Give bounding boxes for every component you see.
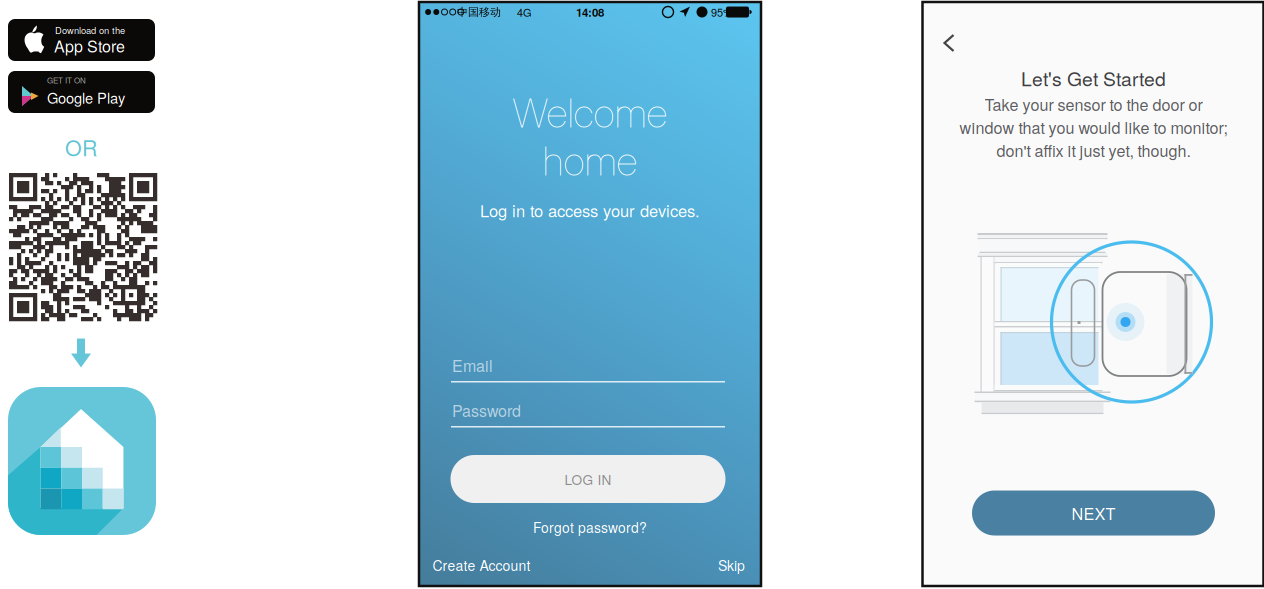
staticText: Password: [452, 398, 521, 421]
staticText: Google Play: [47, 87, 125, 108]
button[interactable]: Forgot password?: [520, 516, 660, 538]
button[interactable]: NEXT: [972, 490, 1215, 535]
staticText: Log in to access your devices.: [480, 198, 700, 222]
staticText: 中国移动: [457, 5, 501, 19]
staticText: 14:08: [576, 4, 604, 20]
button[interactable]: Back: [931, 26, 965, 60]
staticText: window that you would like to monitor;: [959, 115, 1227, 138]
button[interactable]: LOG IN: [450, 455, 725, 503]
staticText: Email: [452, 353, 493, 376]
button[interactable]: Password: [451, 401, 725, 429]
staticText: don't affix it just yet, though.: [996, 138, 1190, 161]
button[interactable]: Download on the: [8, 19, 155, 61]
staticText: Let's Get Started: [1021, 64, 1166, 92]
staticText: 4G: [517, 4, 532, 20]
staticText: 95%: [711, 4, 733, 20]
button[interactable]: Email: [451, 356, 725, 384]
staticText: OR: [65, 132, 97, 162]
staticText: GET IT ON: [47, 74, 86, 86]
staticText: NEXT: [1071, 501, 1115, 525]
button[interactable]: GET IT ON: [8, 71, 155, 113]
staticText: LOG IN: [564, 469, 611, 489]
staticText: App Store: [54, 34, 125, 57]
button[interactable]: Skip: [685, 553, 745, 577]
button[interactable]: QR code: [9, 173, 157, 321]
staticText: Create Account: [432, 555, 530, 575]
button[interactable]: Create Account: [432, 553, 552, 577]
staticText: Welcome: [512, 89, 667, 137]
staticText: Forgot password?: [533, 517, 647, 537]
staticText: Download on the: [55, 23, 125, 37]
staticText: Skip: [718, 555, 745, 575]
staticText: Take your sensor to the door or: [984, 92, 1202, 115]
staticText: home: [542, 137, 637, 185]
